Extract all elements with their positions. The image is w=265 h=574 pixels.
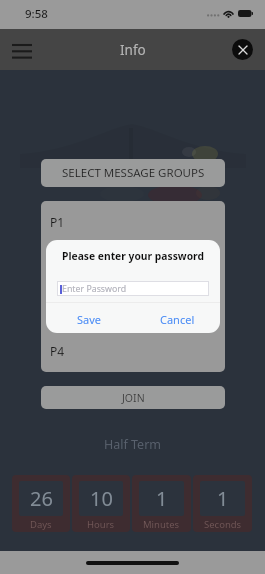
staticText: Save [77,312,102,327]
staticText: Minutes [143,518,180,531]
staticText: Enter Password [62,283,127,295]
staticText: Days [30,518,52,531]
staticText: P4 [50,343,65,359]
staticText: P1 [50,214,65,230]
button[interactable]: Save [46,303,133,333]
staticText: 9:58 [25,6,48,22]
button[interactable]: Cancel [133,303,220,333]
staticText: Hours [87,518,115,531]
staticText: SELECT MESSAGE GROUPS [62,165,205,181]
button[interactable]: P1 [41,201,225,243]
button[interactable]: P2 [41,243,225,286]
button[interactable]: Menu [6,34,38,66]
staticText: Info [120,41,146,59]
button[interactable]: JOIN [41,386,225,409]
staticText: Please enter your password [46,249,220,263]
button[interactable]: P4 [41,329,225,372]
button[interactable]: Close [232,39,253,60]
staticText: 10 [90,485,113,512]
staticText: Half Term [0,436,265,453]
staticText: 26 [30,485,53,512]
staticText: JOIN [122,391,145,405]
button[interactable]: SELECT MESSAGE GROUPS [41,159,225,187]
staticText: P2 [50,257,65,273]
staticText: Seconds [204,518,242,531]
staticText: 1 [156,485,168,512]
button[interactable]: P3 [41,286,225,329]
staticText: Cancel [160,312,195,327]
staticText: 1 [217,485,229,512]
